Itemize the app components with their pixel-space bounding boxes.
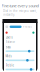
staticText: Dial in the mix you want, instantly. — [3, 9, 37, 16]
staticText: Levels — [5, 36, 12, 39]
button[interactable]: Treble — [5, 64, 34, 71]
staticText: Balance — [5, 40, 15, 44]
staticText: Preset — [23, 25, 32, 28]
staticText: Fine-tune every sound — [1, 3, 38, 8]
staticText: Mids — [5, 54, 11, 58]
button[interactable]: Mids — [5, 54, 34, 62]
staticText: Treble — [5, 64, 14, 67]
button[interactable]: Bass — [5, 45, 34, 52]
staticText: Bass — [5, 45, 10, 49]
